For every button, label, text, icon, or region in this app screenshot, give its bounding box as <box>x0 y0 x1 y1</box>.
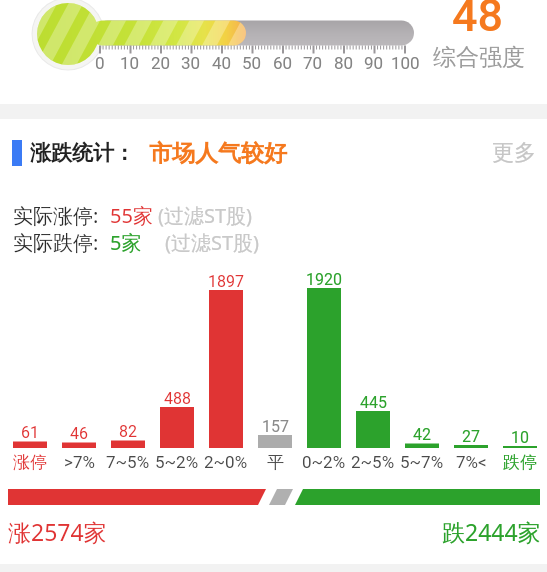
staticText: 平 <box>267 452 284 473</box>
staticText: 1897 <box>208 272 244 291</box>
staticText: (过滤ST股) <box>165 229 260 256</box>
staticText: 10 <box>120 53 140 73</box>
staticText: 1920 <box>306 270 342 289</box>
staticText: 48 <box>452 0 504 39</box>
staticText: 42 <box>413 425 431 444</box>
staticText: 0 <box>95 53 105 73</box>
staticText: 5~7% <box>400 452 444 472</box>
staticText: 82 <box>119 422 137 441</box>
staticText: 30 <box>181 53 201 73</box>
staticText: 70 <box>303 53 323 73</box>
staticText: 5~2% <box>155 452 199 472</box>
staticText: 10 <box>511 428 529 447</box>
staticText: 55家 <box>110 202 153 229</box>
staticText: 实际跌停: <box>13 229 99 256</box>
staticText: 7%< <box>456 452 487 472</box>
staticText: 46 <box>70 424 88 443</box>
staticText: >7% <box>64 452 95 472</box>
staticText: 涨停 <box>13 452 47 473</box>
staticText: 2~5% <box>351 452 395 472</box>
button[interactable]: 更多 <box>488 138 540 168</box>
staticText: 综合强度 <box>433 43 525 72</box>
staticText: 157 <box>262 417 289 436</box>
staticText: 7~5% <box>106 452 150 472</box>
staticText: 涨跌统计： <box>30 140 135 166</box>
staticText: 2~0% <box>204 452 248 472</box>
staticText: 20 <box>151 53 171 73</box>
staticText: 涨2574家 <box>8 516 107 547</box>
staticText: 市场人气较好 <box>149 139 287 168</box>
staticText: 0~2% <box>302 452 346 472</box>
staticText: 40 <box>212 53 232 73</box>
staticText: 5家 <box>110 229 142 256</box>
staticText: 90 <box>364 53 384 73</box>
staticText: 80 <box>334 53 354 73</box>
staticText: (过滤ST股) <box>158 202 253 229</box>
staticText: 27 <box>462 427 480 446</box>
staticText: 跌2444家 <box>442 516 541 547</box>
staticText: 跌停 <box>503 452 537 473</box>
staticText: 445 <box>360 393 387 412</box>
staticText: 50 <box>242 53 262 73</box>
staticText: 更多 <box>492 139 536 167</box>
staticText: 61 <box>21 423 39 442</box>
staticText: 60 <box>273 53 293 73</box>
staticText: 488 <box>164 389 191 408</box>
staticText: 实际涨停: <box>13 202 99 229</box>
staticText: 100 <box>391 53 420 73</box>
